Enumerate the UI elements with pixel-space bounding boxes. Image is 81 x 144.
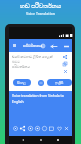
button[interactable]: Translate: [12, 125, 18, 131]
button[interactable]: Swap languages: [37, 79, 44, 86]
staticText: Voice Translation: [26, 11, 55, 16]
button[interactable]: Record: [34, 125, 40, 131]
button[interactable]: Language: [39, 42, 46, 49]
staticText: ඔබේ කටහඬ ලිඛිත පෙළක් බවට පරිවර්තනය: [12, 54, 60, 69]
button[interactable]: Play: [27, 125, 33, 131]
button[interactable]: Favourite: [56, 125, 62, 131]
staticText: සිංහල: [17, 81, 27, 85]
button[interactable]: Copy: [61, 60, 69, 68]
button[interactable]: Recents: [55, 137, 61, 143]
button[interactable]: Share: [61, 53, 69, 61]
button[interactable]: More options: [62, 42, 70, 50]
button[interactable]: සිංහල: [13, 79, 31, 86]
staticText: පරිවර්තනය: [23, 44, 43, 48]
button[interactable]: Share: [19, 125, 25, 131]
staticText: ඉංග්‍රීසි: [55, 81, 64, 85]
button[interactable]: Home: [38, 137, 44, 143]
button[interactable]: Clear: [61, 67, 69, 75]
button[interactable]: Close: [63, 125, 69, 131]
button[interactable]: History: [50, 42, 58, 50]
button[interactable]: ඉංග්‍රීසි: [47, 79, 72, 86]
staticText: හඬ පරිවර්තනය: [20, 2, 61, 10]
button[interactable]: Back: [20, 137, 26, 143]
button[interactable]: Save: [48, 125, 54, 131]
button[interactable]: Refresh: [41, 125, 47, 131]
button[interactable]: Menu: [11, 42, 18, 49]
staticText: Voice translation from Sinhala to Englis…: [12, 93, 72, 104]
